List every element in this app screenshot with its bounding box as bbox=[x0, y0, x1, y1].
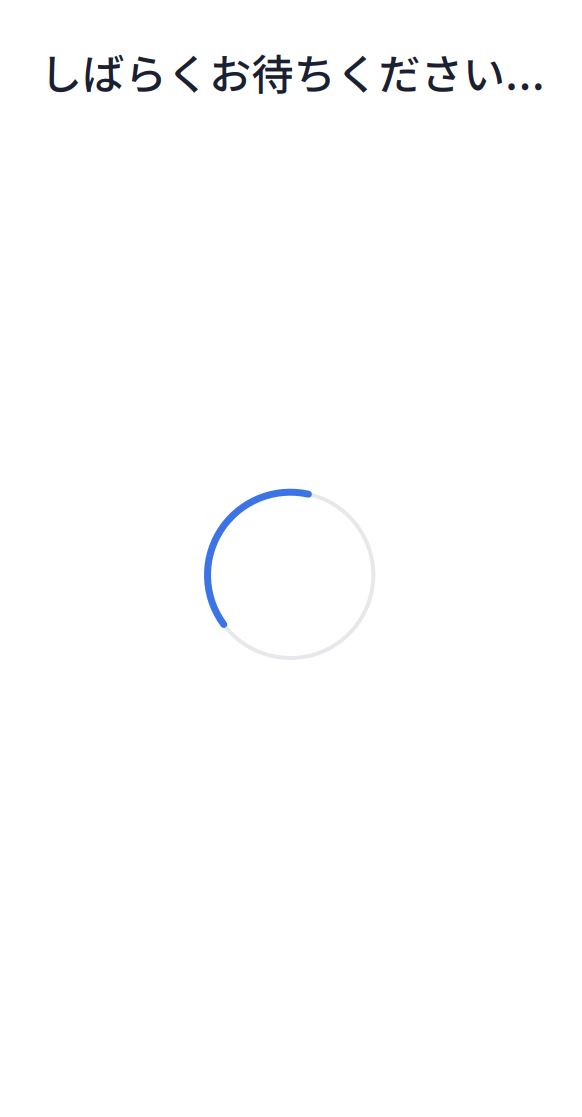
staticText: しばらくお待ちください... bbox=[40, 41, 545, 102]
